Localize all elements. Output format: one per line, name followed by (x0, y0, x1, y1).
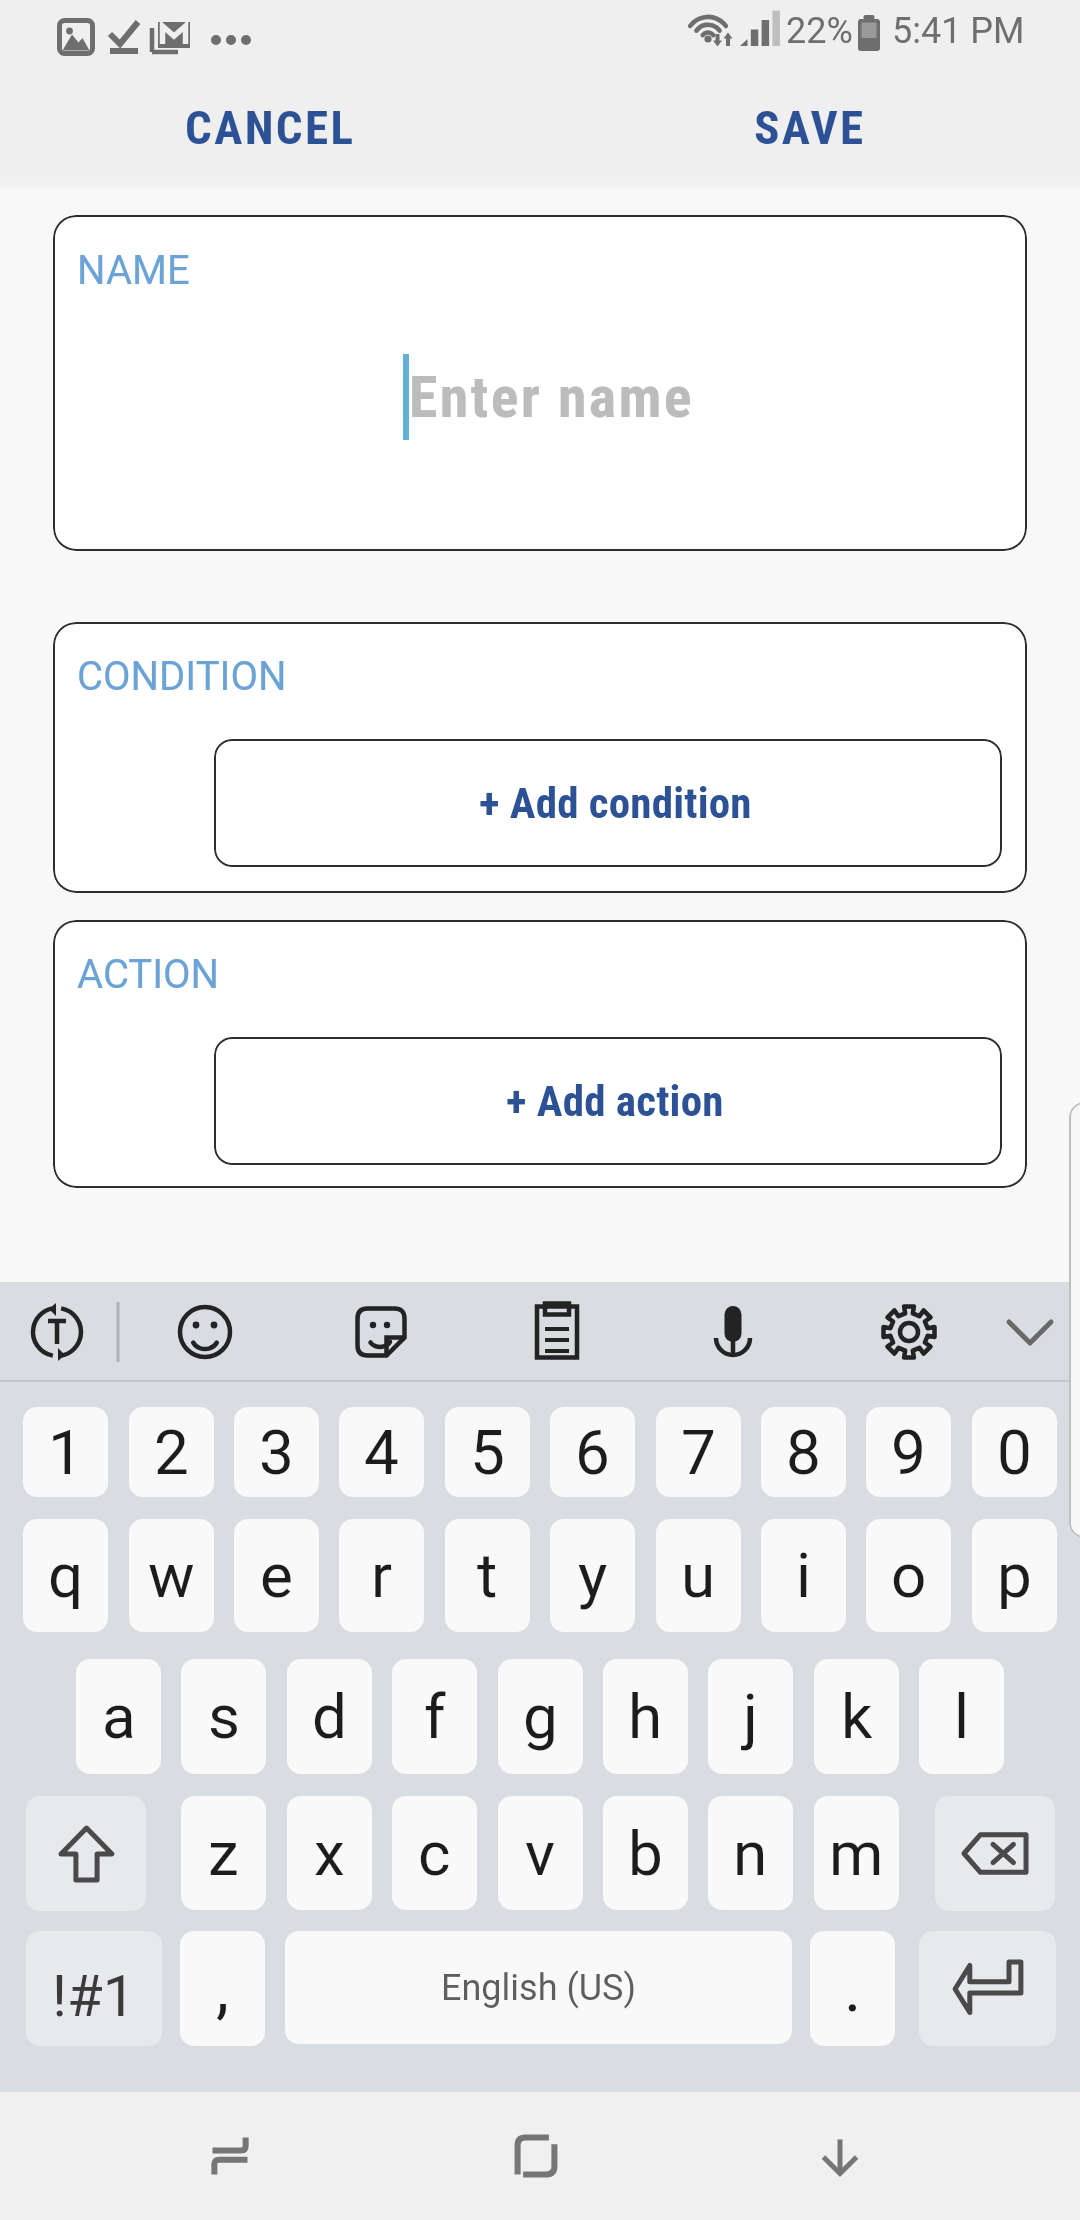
button[interactable]: x (287, 1796, 372, 1910)
button[interactable]: . (810, 1931, 895, 2046)
button[interactable]: Emoji (130, 1282, 306, 1382)
staticText: c (418, 1817, 451, 1890)
button[interactable]: d (287, 1659, 372, 1774)
staticText: , (216, 1950, 229, 2027)
staticText: 4 (364, 1416, 399, 1489)
staticText: ACTION (77, 951, 220, 998)
button[interactable]: English (US) (285, 1931, 792, 2044)
button[interactable]: 4 (339, 1407, 424, 1497)
staticText: v (525, 1817, 556, 1890)
button[interactable]: Backspace (935, 1796, 1055, 1911)
button[interactable]: Recents (158, 2092, 302, 2220)
staticText: w (148, 1539, 195, 1612)
button[interactable]: l (919, 1659, 1004, 1774)
button[interactable]: b (603, 1796, 688, 1910)
button[interactable]: s (181, 1659, 266, 1774)
staticText: SAVE (754, 100, 866, 155)
staticText: 0 (997, 1416, 1032, 1489)
staticText: o (891, 1539, 927, 1612)
button[interactable]: Hide keyboard (1010, 1282, 1080, 1382)
button[interactable]: w (129, 1519, 214, 1632)
staticText: t (477, 1539, 498, 1612)
button[interactable]: Home (464, 2092, 608, 2220)
staticText: e (260, 1539, 293, 1612)
staticText: b (628, 1817, 663, 1890)
button[interactable]: CANCEL (0, 79, 540, 175)
staticText: 5:41 PM (892, 10, 1025, 52)
button[interactable]: 9 (866, 1407, 951, 1497)
staticText: k (841, 1680, 873, 1753)
staticText: p (997, 1539, 1032, 1612)
staticText: n (733, 1817, 768, 1890)
button[interactable]: 3 (234, 1407, 319, 1497)
button[interactable]: 0 (972, 1407, 1057, 1497)
button[interactable]: u (656, 1519, 741, 1632)
button[interactable]: f (392, 1659, 477, 1774)
staticText: !#1 (52, 1962, 136, 2030)
button[interactable]: h (603, 1659, 688, 1774)
button[interactable]: j (708, 1659, 793, 1774)
staticText: + Add condition (479, 778, 752, 828)
staticText: 7 (681, 1416, 716, 1489)
button[interactable]: 2 (129, 1407, 214, 1497)
button[interactable]: Back (768, 2092, 912, 2220)
button[interactable]: r (339, 1519, 424, 1632)
staticText: 22% (786, 10, 853, 52)
staticText: m (829, 1817, 884, 1890)
staticText: a (102, 1680, 136, 1753)
button[interactable]: Clipboard (482, 1282, 658, 1382)
button[interactable]: Shift (26, 1796, 146, 1911)
button[interactable]: i (761, 1519, 846, 1632)
button[interactable]: a (76, 1659, 161, 1774)
staticText: u (681, 1539, 716, 1612)
button[interactable]: 1 (23, 1407, 108, 1497)
staticText: q (48, 1539, 84, 1612)
staticText: CONDITION (77, 653, 287, 700)
button[interactable]: Enter (919, 1931, 1056, 2046)
button[interactable]: 7 (656, 1407, 741, 1497)
button[interactable]: 8 (761, 1407, 846, 1497)
button[interactable]: , (180, 1931, 265, 2046)
button[interactable]: + Add action (214, 1037, 1002, 1165)
button[interactable]: Keyboard settings (834, 1282, 1010, 1382)
button[interactable]: v (498, 1796, 583, 1910)
button[interactable]: z (181, 1796, 266, 1910)
button[interactable]: 5 (445, 1407, 530, 1497)
staticText: 8 (786, 1416, 821, 1489)
staticText: English (US) (441, 1967, 636, 2009)
button[interactable]: n (708, 1796, 793, 1910)
staticText: x (314, 1817, 345, 1890)
staticText: r (371, 1539, 393, 1612)
staticText: i (796, 1539, 812, 1612)
button[interactable]: y (550, 1519, 635, 1632)
staticText: g (523, 1680, 558, 1753)
button[interactable]: SAVE (540, 79, 1080, 175)
staticText: 5 (470, 1416, 505, 1489)
staticText: Enter name (409, 363, 694, 431)
button[interactable]: k (814, 1659, 899, 1774)
button[interactable]: c (392, 1796, 477, 1910)
staticText: + Add action (506, 1076, 724, 1126)
staticText: f (424, 1680, 446, 1753)
button[interactable]: m (814, 1796, 899, 1910)
button[interactable]: e (234, 1519, 319, 1632)
staticText: d (312, 1680, 347, 1753)
staticText: y (578, 1539, 608, 1612)
staticText: CANCEL (185, 100, 356, 155)
button[interactable]: + Add condition (214, 739, 1002, 867)
button[interactable]: Stickers (306, 1282, 482, 1382)
staticText: . (844, 1950, 862, 2027)
button[interactable]: Voice input (658, 1282, 834, 1382)
staticText: NAME (77, 247, 190, 294)
button[interactable]: Symbols (26, 1931, 162, 2046)
button[interactable]: Translate (0, 1282, 130, 1382)
button[interactable]: 6 (550, 1407, 635, 1497)
button[interactable]: g (498, 1659, 583, 1774)
staticText: 3 (259, 1416, 294, 1489)
button[interactable]: q (23, 1519, 108, 1632)
button[interactable]: p (972, 1519, 1057, 1632)
button[interactable]: t (445, 1519, 530, 1632)
button[interactable]: o (866, 1519, 951, 1632)
staticText: z (208, 1817, 239, 1890)
staticText: s (208, 1680, 240, 1753)
